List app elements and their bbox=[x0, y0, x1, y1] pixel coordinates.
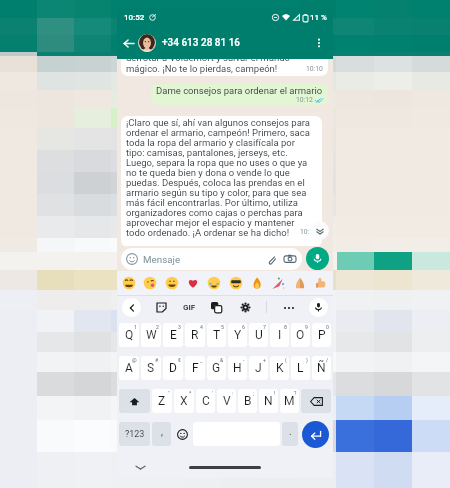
button[interactable]: N bbox=[259, 389, 278, 413]
staticText: 6 bbox=[242, 324, 245, 330]
button[interactable]: Emoji bbox=[122, 276, 136, 290]
button[interactable]: U bbox=[249, 323, 268, 347]
staticText: D bbox=[169, 361, 177, 375]
button[interactable]: O bbox=[291, 323, 310, 347]
button[interactable]: Fire bbox=[250, 276, 264, 290]
button[interactable]: Emoji bbox=[207, 276, 221, 290]
button[interactable]: Settings bbox=[237, 299, 254, 316]
button[interactable]: Back bbox=[120, 35, 137, 52]
button[interactable]: Emoji bbox=[165, 276, 179, 290]
button[interactable]: ?123 bbox=[119, 422, 150, 446]
button[interactable]: Ñ bbox=[312, 356, 331, 380]
staticText: W bbox=[146, 328, 157, 342]
button[interactable]: Back bbox=[122, 298, 141, 317]
button[interactable]: More bbox=[280, 299, 297, 316]
button[interactable]: X bbox=[174, 389, 194, 413]
button[interactable]: Mensaje bbox=[121, 248, 302, 270]
staticText: 1 bbox=[134, 324, 137, 330]
staticText: . bbox=[289, 426, 292, 438]
staticText: ) bbox=[306, 357, 308, 363]
button[interactable]: Stickers bbox=[153, 299, 170, 316]
staticText: H bbox=[233, 361, 242, 375]
staticText: - bbox=[243, 357, 245, 363]
staticText: 11 % bbox=[310, 13, 327, 22]
button[interactable]: Backspace bbox=[301, 389, 331, 413]
button[interactable]: Thumbs up bbox=[314, 276, 328, 290]
staticText: 9 bbox=[305, 324, 308, 330]
button[interactable]: M bbox=[280, 389, 299, 413]
button[interactable]: Hide keyboard bbox=[133, 460, 147, 474]
staticText: ( bbox=[285, 357, 287, 363]
staticText: Y bbox=[234, 328, 242, 342]
staticText: : bbox=[232, 390, 234, 396]
staticText: ! bbox=[274, 390, 276, 396]
button[interactable]: Voice message bbox=[306, 247, 329, 270]
button[interactable]: V bbox=[217, 389, 236, 413]
staticText: S bbox=[147, 361, 155, 375]
staticText: G bbox=[212, 361, 221, 375]
button[interactable]: T bbox=[207, 323, 226, 347]
button[interactable]: Shift bbox=[119, 389, 150, 413]
staticText: & bbox=[220, 357, 224, 363]
button[interactable]: Heart bbox=[186, 276, 200, 290]
button[interactable]: GIF bbox=[183, 303, 196, 312]
staticText: _ bbox=[200, 357, 203, 363]
staticText: I bbox=[278, 328, 282, 342]
button[interactable]: Y bbox=[228, 323, 247, 347]
button[interactable]: , bbox=[152, 422, 171, 446]
staticText: ' bbox=[212, 390, 213, 396]
button[interactable]: Emoji bbox=[143, 276, 157, 290]
button[interactable]: Voice input bbox=[309, 298, 328, 317]
button[interactable]: Enter bbox=[302, 421, 329, 448]
staticText: L bbox=[297, 361, 304, 375]
staticText: K bbox=[276, 361, 284, 375]
button[interactable]: H bbox=[228, 356, 247, 380]
button[interactable]: Praying hands bbox=[293, 276, 307, 290]
staticText: 10:12 bbox=[296, 96, 313, 104]
button[interactable]: S bbox=[141, 356, 161, 380]
button[interactable]: W bbox=[141, 323, 161, 347]
staticText: Ñ bbox=[317, 361, 326, 375]
staticText: + bbox=[263, 357, 266, 363]
button[interactable]: . bbox=[282, 422, 298, 446]
button[interactable]: Q bbox=[119, 323, 139, 347]
button[interactable]: G bbox=[207, 356, 226, 380]
staticText: O bbox=[296, 328, 305, 342]
staticText: € bbox=[178, 357, 181, 363]
button[interactable]: I bbox=[270, 323, 289, 347]
button[interactable]: Scroll to bottom bbox=[310, 221, 329, 240]
staticText: ?123 bbox=[125, 429, 145, 440]
staticText: 4 bbox=[200, 324, 203, 330]
staticText: ¡Claro que sí, ahí van algunos consejos … bbox=[126, 117, 315, 238]
staticText: 10:52 bbox=[124, 13, 145, 22]
button[interactable]: More options bbox=[310, 34, 328, 52]
staticText: 10:12 bbox=[300, 228, 317, 236]
button[interactable]: Emoji bbox=[173, 422, 191, 446]
button[interactable]: E bbox=[163, 323, 183, 347]
staticText: N bbox=[264, 394, 273, 408]
staticText: Dame consejos para ordenar el armario bbox=[156, 85, 323, 96]
staticText: +34 613 28 81 16 bbox=[162, 37, 241, 49]
button[interactable]: Emoji bbox=[229, 276, 243, 290]
button[interactable]: K bbox=[270, 356, 289, 380]
button[interactable]: P bbox=[312, 323, 331, 347]
button[interactable]: R bbox=[185, 323, 205, 347]
button[interactable]: L bbox=[291, 356, 310, 380]
staticText: Q bbox=[125, 328, 134, 342]
button[interactable]: B bbox=[238, 389, 257, 413]
button[interactable]: D bbox=[163, 356, 183, 380]
button[interactable]: Z bbox=[152, 389, 172, 413]
staticText: 8 bbox=[284, 324, 287, 330]
staticText: 0 bbox=[326, 324, 329, 330]
button[interactable]: Translate bbox=[208, 299, 225, 316]
staticText: E bbox=[170, 328, 177, 342]
staticText: V bbox=[223, 394, 231, 408]
button[interactable]: C bbox=[196, 389, 215, 413]
staticText: ; bbox=[253, 390, 255, 396]
button[interactable]: J bbox=[249, 356, 268, 380]
button[interactable]: F bbox=[185, 356, 205, 380]
button[interactable]: Party popper bbox=[271, 276, 285, 290]
staticText: Z bbox=[158, 394, 166, 408]
button[interactable]: A bbox=[119, 356, 139, 380]
